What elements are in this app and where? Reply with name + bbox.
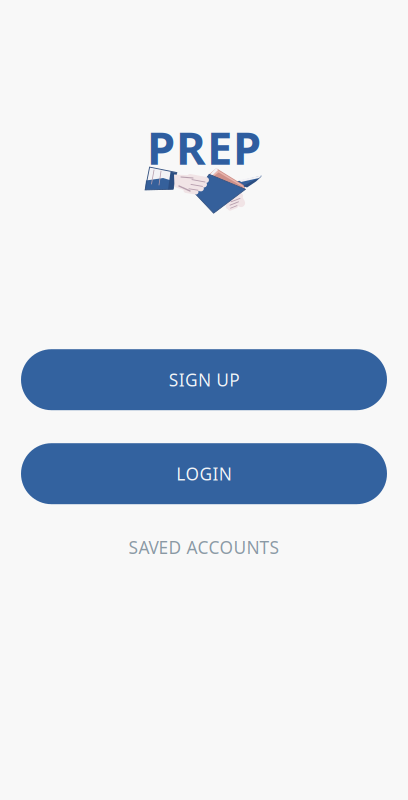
staticText: LOGIN [176,462,232,485]
button[interactable]: LOGIN [21,443,387,504]
staticText: PREP [147,117,261,177]
staticText: SIGN UP [169,368,239,391]
button[interactable]: SAVED ACCOUNTS [21,533,387,561]
button[interactable]: SIGN UP [21,349,387,410]
staticText: SAVED ACCOUNTS [128,536,279,559]
